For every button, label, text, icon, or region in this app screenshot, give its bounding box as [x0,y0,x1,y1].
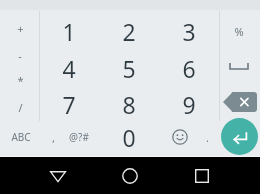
staticText: . [206,130,209,145]
button[interactable]: , [43,122,63,152]
staticText: , [52,130,55,145]
staticText: 6 [182,53,196,84]
button[interactable]: 6 [159,50,219,86]
button[interactable]: % [219,14,259,48]
staticText: ABC [11,130,31,144]
button[interactable]: Space [219,50,259,84]
staticText: % [234,24,244,39]
staticText: 3 [182,16,196,47]
button[interactable]: Backspace [222,92,257,112]
button[interactable]: 1 [39,13,99,49]
staticText: / [18,100,23,115]
staticText: 9 [182,89,196,120]
staticText: 7 [62,89,76,120]
button[interactable]: 4 [39,50,99,86]
staticText: 0 [122,122,136,153]
button[interactable]: / [1,94,39,121]
staticText: - [18,48,22,63]
staticText: 8 [122,89,136,120]
button[interactable]: ABC [1,122,41,152]
button[interactable]: 3 [159,13,219,49]
button[interactable]: @?# [61,122,97,152]
button[interactable]: * [1,67,39,94]
staticText: 4 [62,53,76,84]
button[interactable]: 8 [99,86,159,122]
staticText: + [17,21,24,36]
button[interactable]: 7 [39,86,99,122]
button[interactable]: 0 [99,119,159,155]
button[interactable]: 2 [99,13,159,49]
button[interactable]: 5 [99,50,159,86]
button[interactable]: . [198,122,216,152]
button[interactable]: Enter [221,118,258,155]
staticText: * [17,73,24,88]
staticText: 1 [62,16,76,47]
button[interactable]: Emoji [166,123,194,151]
staticText: 5 [122,53,136,84]
staticText: 2 [122,16,136,47]
button[interactable]: + [1,15,39,42]
button[interactable]: 9 [159,86,219,122]
staticText: @?# [69,130,89,144]
button[interactable]: - [1,42,39,69]
